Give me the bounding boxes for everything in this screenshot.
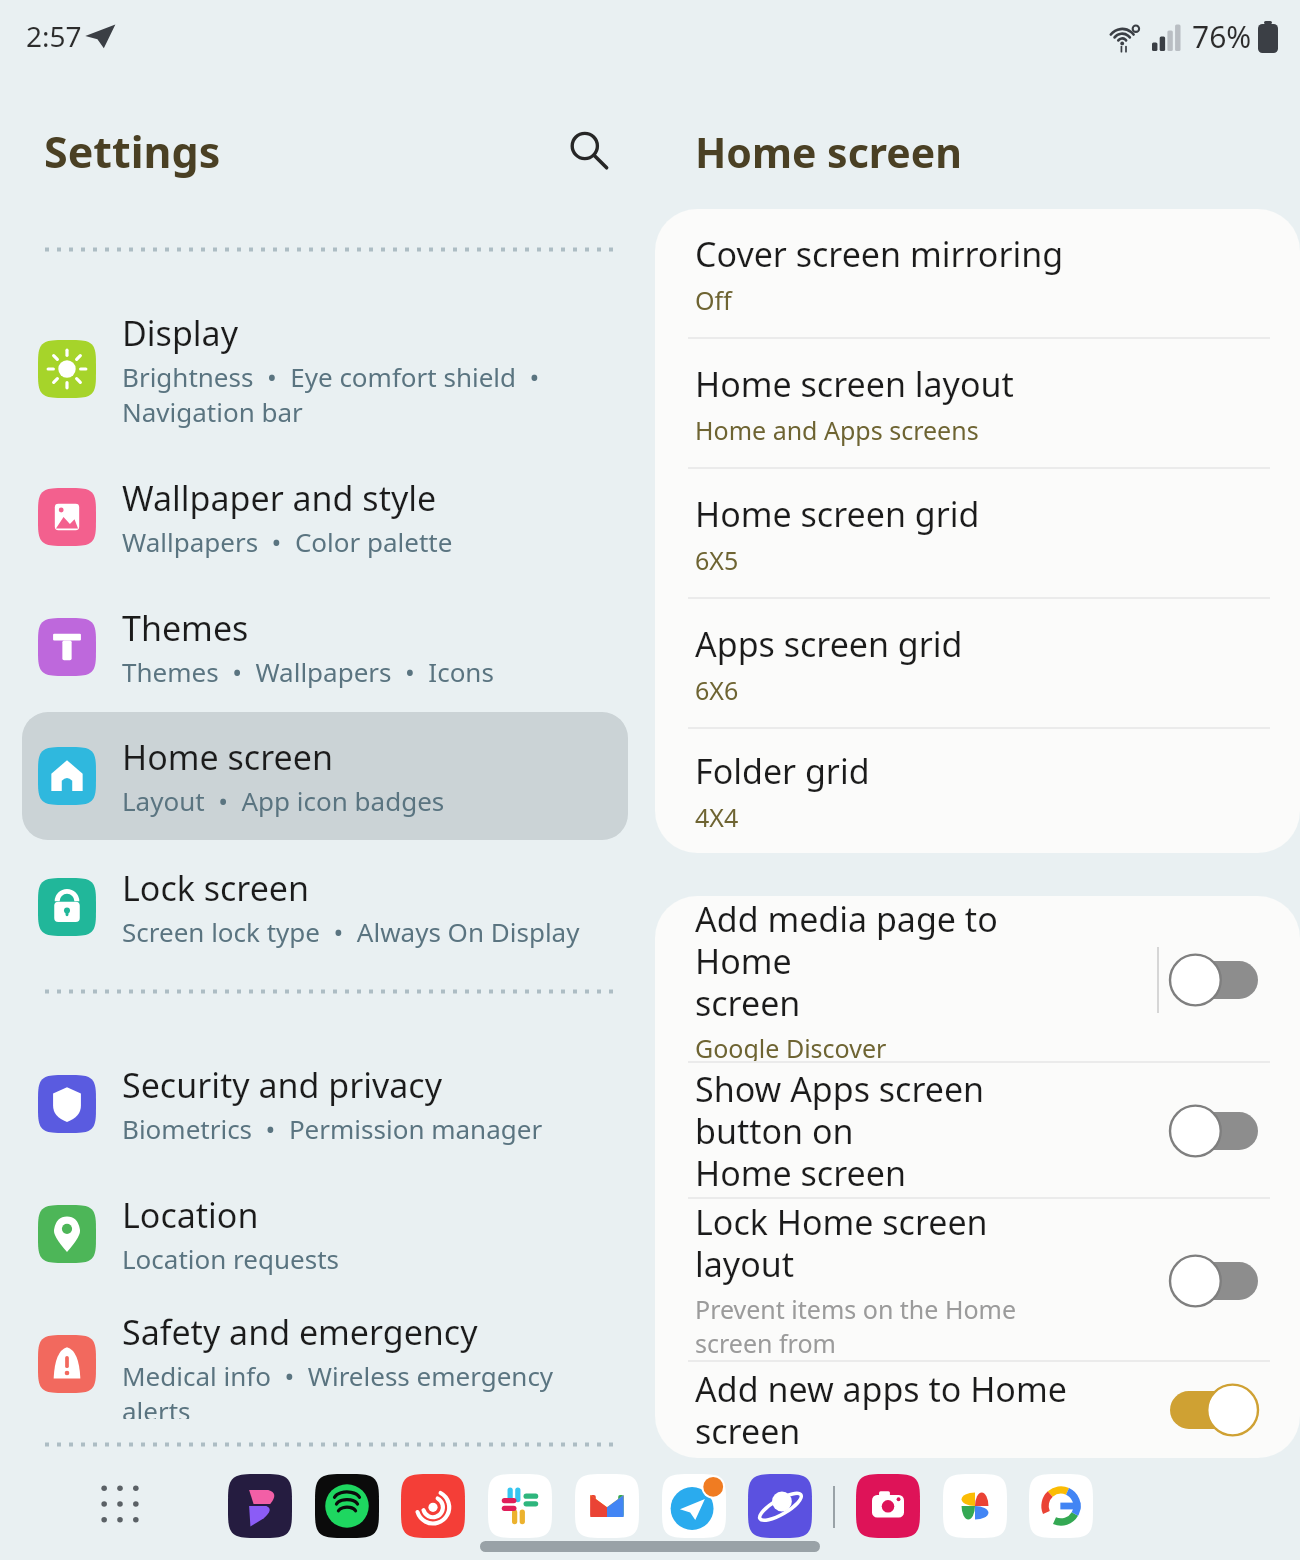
button[interactable]: Add new apps to Home screen (655, 1362, 1300, 1458)
staticText: Lock Home screen layout (695, 1199, 1085, 1287)
staticText: Themes • Wallpapers • Icons (122, 654, 494, 689)
staticText: Layout • App icon badges (122, 783, 445, 818)
button[interactable]: Location (22, 1179, 628, 1289)
staticText: Biometrics • Permission manager (122, 1111, 543, 1146)
button[interactable]: Search (554, 116, 624, 186)
button[interactable]: Home screen (22, 712, 628, 840)
staticText: Location (122, 1192, 259, 1238)
staticText: 6X5 (695, 543, 739, 577)
button[interactable]: Themes (22, 592, 628, 702)
staticText: Google Discover (695, 1031, 887, 1063)
button[interactable]: Wallpaper and style (22, 462, 628, 572)
staticText: Off (695, 283, 732, 317)
button[interactable]: Lock screen (22, 852, 628, 962)
staticText: Add new apps to Home screen (695, 1366, 1085, 1454)
button[interactable]: POCKET (401, 1474, 465, 1538)
button[interactable]: Lock Home screen layout (1170, 1254, 1258, 1308)
staticText: Brightness • Eye comfort shield • (122, 359, 540, 394)
button[interactable]: Lock Home screen layout (655, 1199, 1300, 1362)
button[interactable]: SPOTIFY (315, 1474, 379, 1538)
staticText: 6X6 (695, 673, 739, 707)
button[interactable]: INSTAGRAM (856, 1474, 920, 1538)
staticText: Medical info • Wireless emergency alerts (122, 1358, 628, 1419)
button[interactable]: Display (22, 304, 628, 434)
button[interactable]: Folder grid (655, 729, 1300, 853)
staticText: Apps screen grid (695, 621, 963, 667)
staticText: Wallpapers • Color palette (122, 524, 453, 559)
button[interactable]: Settings (44, 122, 221, 181)
staticText: Home and Apps screens (695, 413, 979, 447)
staticText: Home screen grid (695, 491, 980, 537)
button[interactable]: BUMBLE (228, 1474, 292, 1538)
button[interactable]: TELEGRAM (662, 1474, 726, 1538)
staticText: Navigation bar (122, 394, 303, 429)
staticText: Display (122, 310, 238, 356)
staticText: 2:57 (26, 17, 82, 55)
staticText: Safety and emergency (122, 1309, 478, 1355)
staticText: Wallpaper and style (122, 475, 437, 521)
button[interactable]: INTERNET (748, 1474, 812, 1538)
staticText: Folder grid (695, 748, 870, 794)
staticText: Screen lock type • Always On Display (122, 914, 580, 949)
button[interactable]: GOOGLE (1029, 1474, 1093, 1538)
staticText: Location requests (122, 1241, 339, 1276)
button[interactable]: Cover screen mirroring (655, 209, 1300, 339)
staticText: Prevent items on the Home screen from be… (695, 1292, 1085, 1362)
staticText: Show Apps screen button on Home screen (695, 1066, 1085, 1196)
button[interactable]: Apps (90, 1474, 150, 1534)
button[interactable]: PHOTOS (943, 1474, 1007, 1538)
staticText: 4X4 (695, 800, 739, 834)
button[interactable]: GMAIL (575, 1474, 639, 1538)
staticText: Home screen (695, 124, 962, 180)
button[interactable]: SLACK (488, 1474, 552, 1538)
staticText: Lock screen (122, 865, 310, 911)
button[interactable]: Security and privacy (22, 1049, 628, 1159)
staticText: Home screen layout (695, 361, 1014, 407)
button[interactable]: Home screen grid (655, 469, 1300, 599)
button[interactable]: Apps screen grid (655, 599, 1300, 729)
button[interactable]: Show Apps screen button on Home screen (655, 1063, 1300, 1199)
staticText: Cover screen mirroring (695, 231, 1064, 277)
button[interactable]: Show Apps screen button on Home screen (1170, 1104, 1258, 1158)
staticText: Home screen (122, 734, 333, 780)
button[interactable]: Add new apps to Home screen (1170, 1383, 1258, 1437)
staticText: Add media page to Home screen (695, 896, 1085, 1026)
button[interactable]: Add media page to Home screen (1170, 953, 1258, 1007)
staticText: Themes (122, 605, 249, 651)
button[interactable]: Safety and emergency (22, 1309, 628, 1419)
button[interactable]: Add media page to Home screen (655, 896, 1300, 1063)
staticText: 76% (1192, 16, 1252, 57)
staticText: Security and privacy (122, 1062, 443, 1108)
button[interactable]: Home screen layout (655, 339, 1300, 469)
